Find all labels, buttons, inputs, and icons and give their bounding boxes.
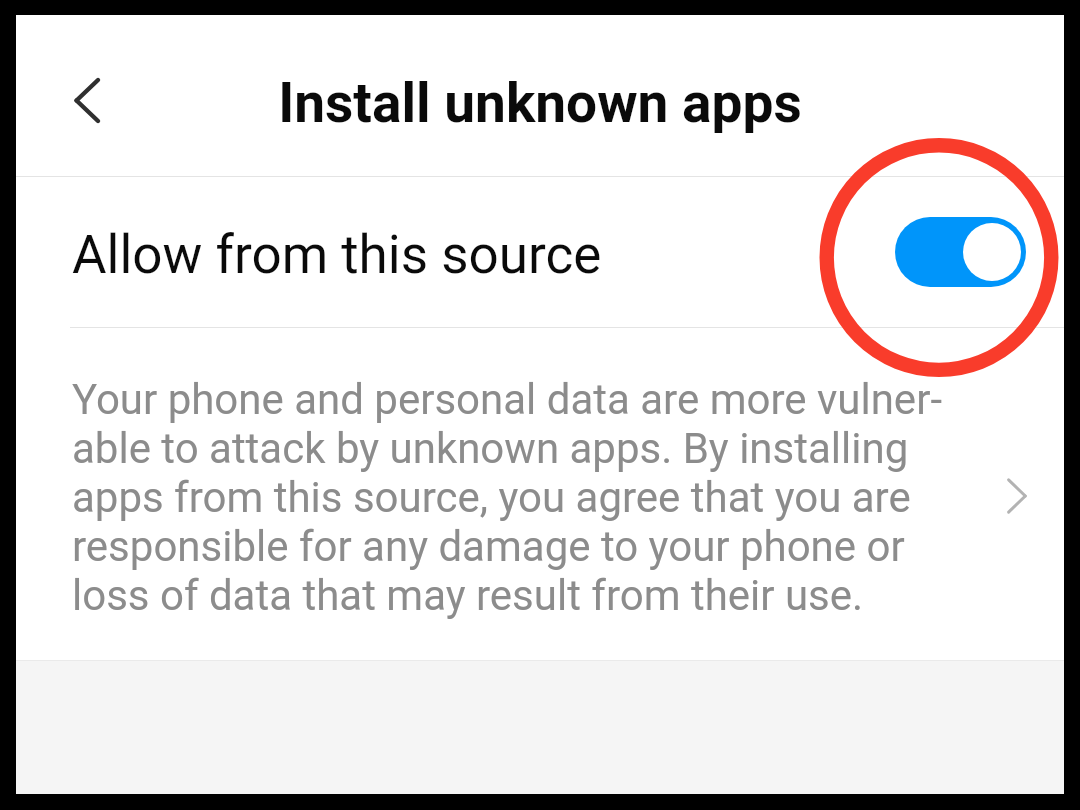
button[interactable]: Back (35, 60, 115, 140)
button[interactable]: Allow from this source (895, 217, 1026, 287)
staticText: Install unknown apps (16, 71, 1064, 135)
staticText: Your phone and personal data are more vu… (72, 375, 942, 620)
button[interactable]: Allow from this source (16, 177, 1064, 324)
staticText: Allow from this source (72, 224, 602, 286)
button[interactable]: Your phone and personal data are more vu… (16, 325, 1064, 659)
